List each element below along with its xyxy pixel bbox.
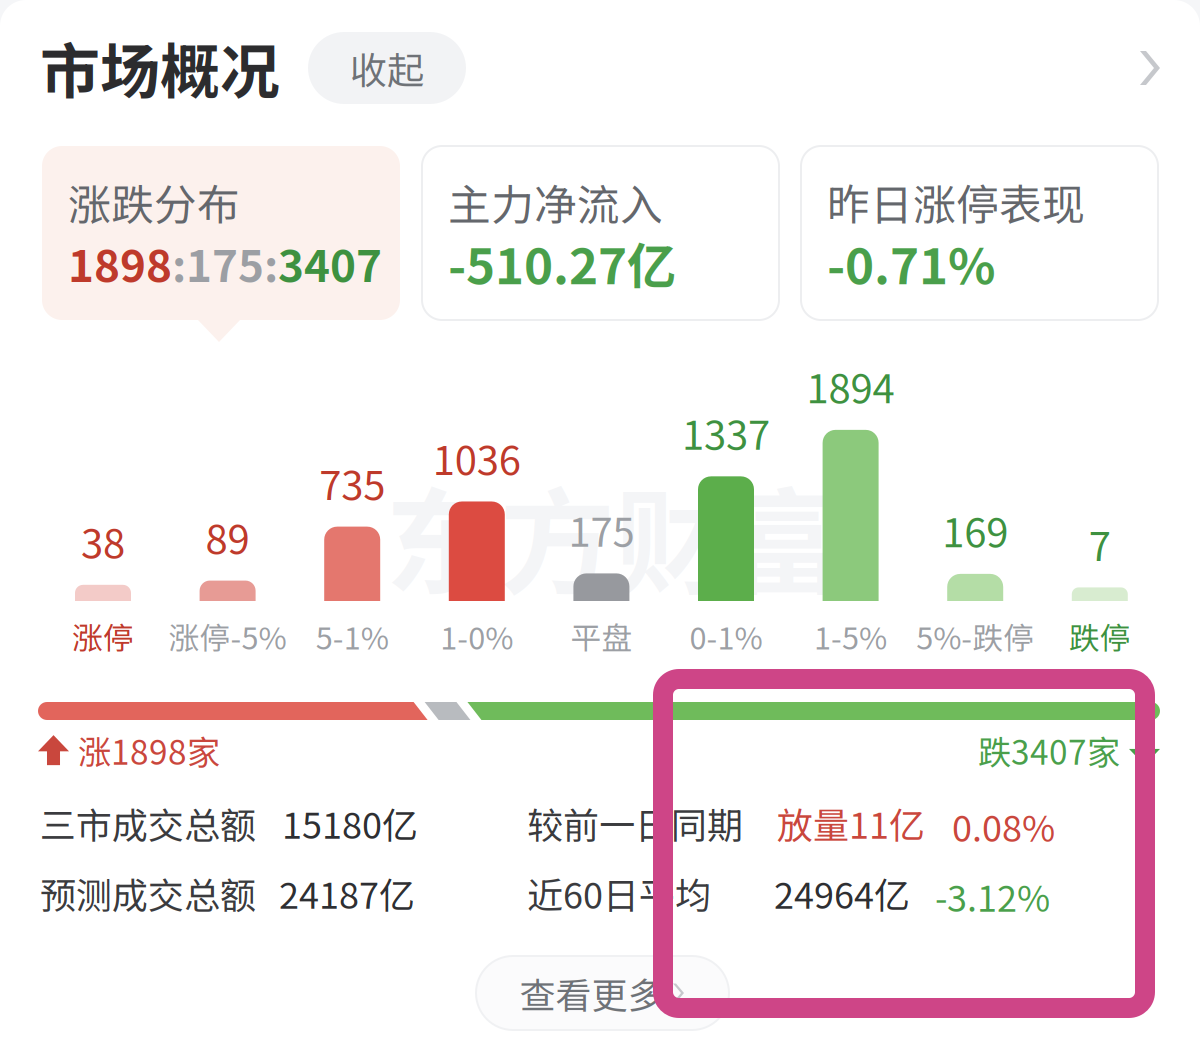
staticText: 跌3407家 xyxy=(978,726,1120,774)
staticText: 昨日涨停表现 xyxy=(827,171,1085,233)
staticText: 1036 xyxy=(433,429,521,486)
staticText: 涨1898家 xyxy=(78,726,220,774)
staticText: 涨跌分布 xyxy=(68,171,240,233)
staticText: 24187亿 xyxy=(279,867,415,919)
button[interactable]: 昨日涨停表现 xyxy=(801,146,1158,320)
staticText: 涨停-5% xyxy=(169,614,287,658)
staticText: 收起 xyxy=(350,41,424,95)
staticText: 5-1% xyxy=(316,614,389,658)
staticText: 1337 xyxy=(682,403,770,461)
staticText: 0-1% xyxy=(689,614,762,658)
staticText: 较前一日同期 xyxy=(527,797,743,849)
staticText: 1-0% xyxy=(440,614,513,658)
staticText: 5%-跌停 xyxy=(916,614,1034,658)
staticText: 查看更多 xyxy=(519,967,663,1019)
staticText: 市场概况 xyxy=(40,24,280,111)
staticText: 38 xyxy=(81,512,125,570)
staticText: -3.12% xyxy=(935,870,1050,922)
staticText: -510.27亿 xyxy=(448,227,676,298)
staticText: 1-5% xyxy=(814,614,887,658)
staticText: 放量11亿 xyxy=(777,797,925,849)
staticText: 7 xyxy=(1089,514,1111,572)
staticText: 1894 xyxy=(807,357,895,415)
staticText: 平盘 xyxy=(570,614,632,658)
button[interactable]: 涨跌分布 xyxy=(42,146,400,320)
button[interactable]: 收起 xyxy=(308,32,466,104)
staticText: 1898 xyxy=(68,231,172,295)
button[interactable]: 主力净流入 xyxy=(422,146,779,320)
staticText: 主力净流入 xyxy=(448,171,663,233)
staticText: 169 xyxy=(942,501,1008,559)
staticText: -0.71% xyxy=(827,227,996,298)
staticText: 24964亿 xyxy=(774,867,910,919)
button[interactable]: 查看更多 xyxy=(476,956,729,1030)
button[interactable]: 展开市场概况 xyxy=(1120,38,1180,98)
staticText: 涨停 xyxy=(72,614,134,658)
staticText: 跌停 xyxy=(1069,614,1131,658)
staticText: 近60日平均 xyxy=(527,867,711,919)
staticText: 735 xyxy=(319,454,385,512)
staticText: :175: xyxy=(172,231,278,295)
staticText: 3407 xyxy=(278,231,382,295)
staticText: 0.08% xyxy=(952,800,1055,852)
staticText: 175 xyxy=(568,500,634,558)
staticText: 东方财富 xyxy=(385,452,845,618)
staticText: 89 xyxy=(206,508,250,565)
staticText: 15180亿 xyxy=(282,797,418,849)
staticText: 预测成交总额 xyxy=(40,867,256,919)
staticText: 三市成交总额 xyxy=(40,797,256,849)
